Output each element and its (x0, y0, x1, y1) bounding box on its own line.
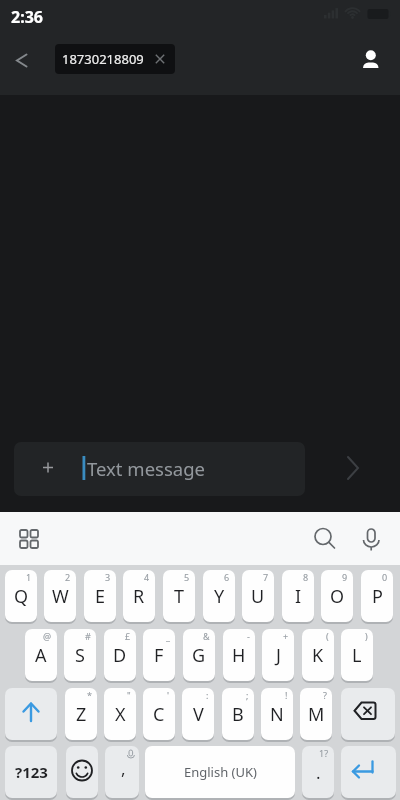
staticText: , (121, 757, 126, 780)
staticText: E (95, 584, 106, 609)
button[interactable] (341, 688, 395, 740)
staticText: H (232, 643, 246, 668)
staticText: 1? (319, 747, 329, 759)
button[interactable]: Y (203, 570, 235, 622)
button[interactable]: F (143, 629, 175, 681)
staticText: English (UK) (184, 763, 257, 781)
staticText: N (270, 702, 284, 727)
staticText: C (153, 702, 165, 727)
staticText: - (247, 630, 250, 642)
staticText: J (276, 643, 281, 668)
button[interactable]: H (223, 629, 255, 681)
button[interactable]: D (104, 629, 136, 681)
staticText: # (85, 630, 91, 642)
staticText: @ (43, 630, 52, 642)
button[interactable]: N (261, 688, 293, 740)
button[interactable] (4, 38, 40, 84)
staticText: Q (14, 584, 29, 609)
staticText: ! (285, 689, 288, 701)
staticText: 6 (224, 571, 230, 583)
button[interactable]: A (25, 629, 57, 681)
staticText: M (308, 702, 325, 727)
staticText: Text message (87, 456, 205, 481)
staticText: 4 (144, 571, 150, 583)
button[interactable]: S (64, 629, 96, 681)
button[interactable]: ?123 (5, 746, 57, 798)
button[interactable]: E (84, 570, 116, 622)
button[interactable] (330, 445, 376, 491)
staticText: Z (76, 702, 87, 727)
staticText: U (251, 584, 265, 609)
staticText: D (113, 643, 127, 668)
staticText: _ (166, 630, 170, 642)
button[interactable]: U (242, 570, 274, 622)
staticText: Y (214, 584, 225, 609)
button[interactable] (306, 520, 344, 558)
staticText: I (295, 584, 302, 609)
staticText: £ (125, 630, 131, 642)
staticText: S (75, 643, 85, 668)
button[interactable]: , (105, 746, 139, 798)
staticText: : (206, 689, 209, 701)
button[interactable]: T (163, 570, 195, 622)
staticText: 7 (263, 571, 269, 583)
button[interactable] (341, 746, 396, 798)
staticText: 1 (26, 571, 32, 583)
button[interactable] (352, 38, 390, 78)
button[interactable]: L (341, 629, 373, 681)
staticText: ( (326, 630, 329, 642)
staticText: 5 (184, 571, 190, 583)
button[interactable]: Z (65, 688, 97, 740)
button[interactable]: Q (5, 570, 37, 622)
staticText: B (232, 702, 244, 727)
button[interactable] (5, 688, 57, 740)
button[interactable] (352, 520, 390, 558)
staticText: . (316, 761, 321, 784)
staticText: ; (246, 689, 249, 701)
button[interactable]: . (302, 746, 334, 798)
staticText: 3 (105, 571, 111, 583)
staticText: 0 (382, 571, 388, 583)
staticText: " (127, 689, 131, 701)
button[interactable]: V (182, 688, 214, 740)
button[interactable]: K (302, 629, 334, 681)
staticText: + (283, 630, 289, 642)
button[interactable] (10, 520, 48, 558)
staticText: ) (365, 630, 368, 642)
button[interactable]: W (44, 570, 76, 622)
staticText: & (203, 630, 210, 642)
staticText: A (35, 643, 47, 668)
button[interactable] (66, 746, 98, 798)
staticText: K (312, 643, 324, 668)
staticText: O (330, 584, 345, 609)
staticText: 9 (342, 571, 348, 583)
button[interactable]: M (300, 688, 332, 740)
button[interactable] (145, 746, 295, 798)
staticText: 2:36 (11, 6, 43, 28)
button[interactable]: C (143, 688, 175, 740)
staticText: ? (323, 689, 327, 701)
button[interactable]: Text message (14, 442, 305, 496)
staticText: 18730218809 (62, 50, 144, 68)
button[interactable]: J (262, 629, 294, 681)
button[interactable]: G (183, 629, 215, 681)
button[interactable]: 18730218809 (55, 44, 175, 74)
staticText: ' (167, 689, 170, 701)
staticText: F (154, 643, 164, 668)
button[interactable]: I (282, 570, 314, 622)
button[interactable]: B (222, 688, 254, 740)
button[interactable]: R (123, 570, 155, 622)
staticText: L (352, 643, 362, 668)
button[interactable]: X (104, 688, 136, 740)
staticText: * (87, 689, 92, 701)
button[interactable]: O (321, 570, 353, 622)
staticText: R (133, 584, 145, 609)
staticText: T (174, 584, 185, 609)
staticText: V (193, 702, 204, 727)
staticText: X (115, 702, 126, 727)
staticText: ?123 (15, 762, 48, 782)
button[interactable]: P (361, 570, 393, 622)
staticText: 2 (65, 571, 71, 583)
staticText: G (192, 643, 206, 668)
staticText: 8 (303, 571, 309, 583)
